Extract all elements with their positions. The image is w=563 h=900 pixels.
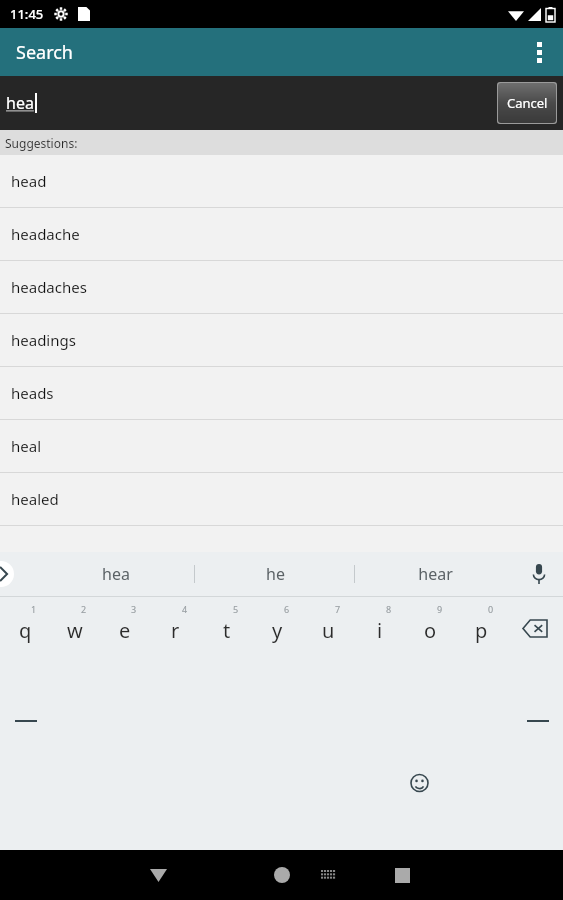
staticText: headache [11, 224, 80, 244]
button[interactable]: heal [0, 420, 563, 472]
button[interactable]: 0 [456, 597, 507, 659]
button[interactable]: Keyboard [312, 859, 344, 891]
button[interactable]: Recent apps [384, 857, 420, 893]
button[interactable]: Cancel [498, 83, 556, 123]
staticText: heal [11, 436, 42, 456]
staticText: 11:45 [10, 5, 44, 23]
staticText: Cancel [507, 94, 548, 112]
button[interactable]: Back [140, 857, 176, 893]
staticText: 7 [335, 603, 341, 615]
staticText: w [67, 617, 83, 644]
staticText: e [119, 617, 131, 644]
staticText: headings [11, 330, 76, 350]
button[interactable]: 5 [201, 597, 252, 659]
button[interactable]: healed [0, 473, 563, 525]
staticText: 3 [131, 603, 137, 615]
staticText: p [475, 617, 488, 644]
staticText: 6 [284, 603, 290, 615]
staticText: 5 [233, 603, 239, 615]
staticText: he [266, 563, 285, 585]
button[interactable]: headings [0, 314, 563, 366]
staticText: heads [11, 383, 54, 403]
button[interactable]: heads [0, 367, 563, 419]
staticText: y [272, 617, 283, 644]
button[interactable]: head [0, 155, 563, 207]
staticText: hear [418, 563, 453, 585]
staticText: head [11, 171, 47, 191]
button[interactable]: 8 [354, 597, 405, 659]
staticText: q [19, 617, 32, 644]
staticText: hea [6, 92, 34, 114]
staticText: Suggestions: [5, 135, 78, 151]
staticText: 2 [81, 603, 87, 615]
staticText: 4 [182, 603, 188, 615]
button[interactable]: 9 [405, 597, 456, 659]
button[interactable]: 4 [150, 597, 201, 659]
staticText: hea [102, 563, 130, 585]
button[interactable]: hear [355, 552, 515, 596]
button[interactable]: headache [0, 208, 563, 260]
button[interactable]: Backspace [507, 597, 563, 659]
staticText: r [171, 617, 180, 644]
button[interactable]: Home [264, 857, 300, 893]
button[interactable]: Voice input [515, 552, 563, 596]
button[interactable]: headaches [0, 261, 563, 313]
button[interactable]: he [195, 552, 355, 596]
button[interactable]: 2 [50, 597, 100, 659]
button[interactable]: 6 [252, 597, 303, 659]
staticText: i [377, 617, 383, 644]
staticText: headaches [11, 277, 87, 297]
staticText: 0 [488, 603, 494, 615]
button[interactable]: 7 [303, 597, 354, 659]
staticText: o [424, 617, 437, 644]
staticText: 9 [437, 603, 443, 615]
button[interactable]: Expand suggestions [0, 560, 28, 588]
staticText: 8 [386, 603, 392, 615]
button[interactable]: 1 [0, 597, 50, 659]
button[interactable]: More options [515, 28, 563, 76]
staticText: Search [16, 40, 73, 65]
staticText: t [223, 617, 231, 644]
staticText: 1 [31, 603, 37, 615]
staticText: u [322, 617, 335, 644]
button[interactable]: hea [36, 552, 195, 596]
staticText: healed [11, 489, 59, 509]
button[interactable]: 3 [100, 597, 150, 659]
